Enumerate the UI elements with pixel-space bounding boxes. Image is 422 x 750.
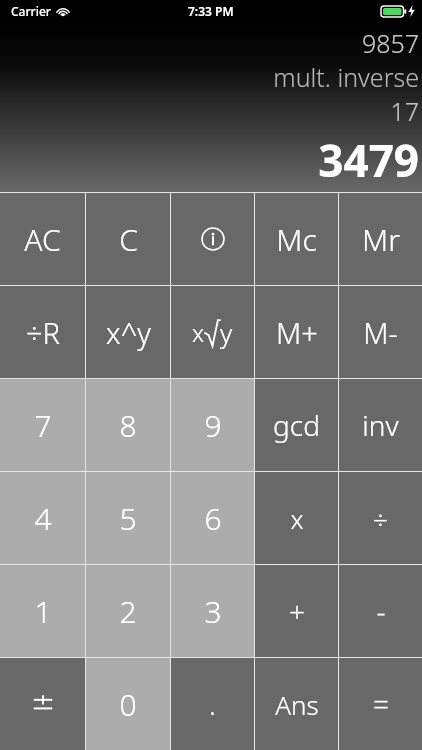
staticText: 4 [34,498,52,539]
button[interactable]: Info [171,193,254,285]
staticText: AC [24,219,61,260]
button[interactable]: 1 [0,565,85,657]
button[interactable]: ÷R [0,286,85,378]
staticText: 7 [34,405,52,446]
staticText: . [209,685,216,723]
button[interactable]: - [339,565,422,657]
button[interactable]: x [255,472,338,564]
staticText: Ans [275,687,319,722]
staticText: 0 [119,684,137,725]
button[interactable]: Mc [255,193,338,285]
button[interactable]: Ans [255,658,338,750]
button[interactable]: 6 [171,472,254,564]
button[interactable]: M- [339,286,422,378]
button[interactable]: Mr [339,193,422,285]
staticText: inv [362,406,399,444]
button[interactable]: AC [0,193,85,285]
staticText: 9857 [361,26,419,60]
staticText: ÷ [373,501,388,536]
staticText: x [290,501,304,536]
staticText: 5 [119,498,137,539]
staticText: + [289,592,305,630]
button[interactable]: x^y [86,286,170,378]
staticText: Mc [276,219,317,260]
staticText: 2 [119,591,137,632]
staticText: y [220,315,233,350]
button[interactable]: = [339,658,422,750]
button[interactable]: inv [339,379,422,471]
button[interactable]: gcd [255,379,338,471]
staticText: Carrier [11,3,51,19]
button[interactable]: 2 [86,565,170,657]
button[interactable]: 9 [171,379,254,471]
button[interactable]: 7 [0,379,85,471]
staticText: = [373,685,389,723]
button[interactable]: 3 [171,565,254,657]
staticText: Mr [362,219,400,260]
button[interactable]: 0 [86,658,170,750]
staticText: 3 [204,591,222,632]
staticText: gcd [273,406,320,444]
button[interactable]: + [255,565,338,657]
button[interactable]: 5 [86,472,170,564]
staticText: 3479 [318,130,419,190]
button[interactable]: C [86,193,170,285]
button[interactable]: Plus minus [0,658,85,750]
staticText: M+ [276,313,318,352]
staticText: 9 [204,405,222,446]
button[interactable]: 8 [86,379,170,471]
button[interactable]: 4 [0,472,85,564]
staticText: x [192,316,205,349]
staticText: ÷R [26,313,60,352]
staticText: C [119,219,138,260]
staticText: - [376,592,386,630]
staticText: 8 [119,405,137,446]
staticText: M- [363,313,398,352]
button[interactable]: x root y [171,286,254,378]
staticText: x^y [106,313,151,352]
button[interactable]: . [171,658,254,750]
staticText: 6 [204,498,222,539]
button[interactable]: M+ [255,286,338,378]
staticText: 7:33 PM [188,3,234,19]
staticText: 1 [34,591,52,632]
staticText: 17 [390,94,419,128]
staticText: mult. inverse [273,60,419,94]
button[interactable]: ÷ [339,472,422,564]
